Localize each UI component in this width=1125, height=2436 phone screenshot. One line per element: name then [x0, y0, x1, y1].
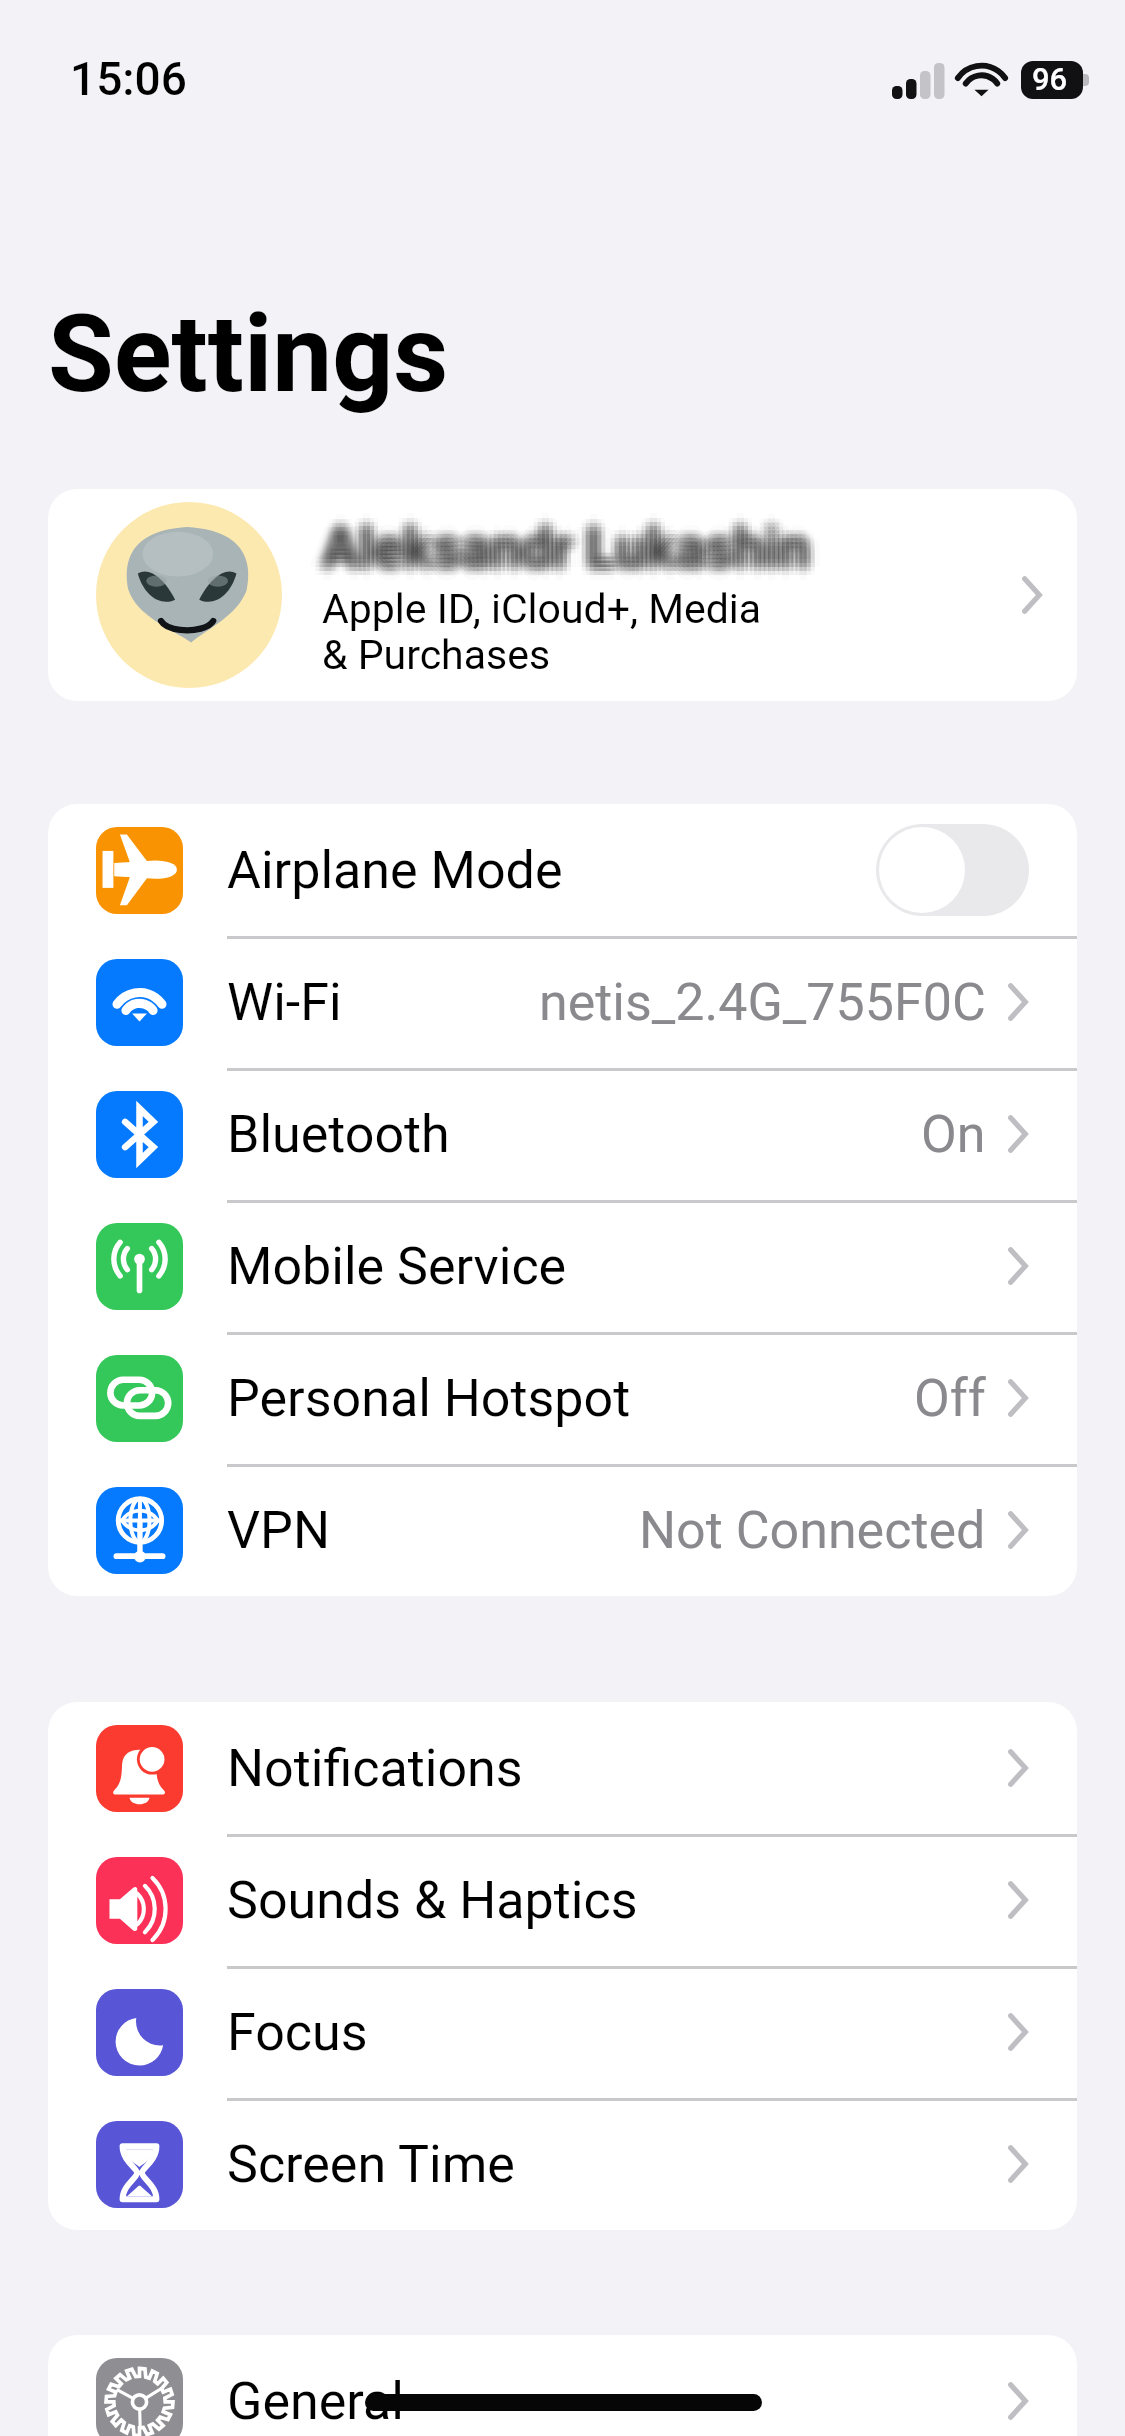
staticText: Aleksandr Lukashin: [314, 512, 802, 576]
button[interactable]: Focus: [48, 1966, 1077, 2098]
staticText: VPN: [227, 1500, 331, 1561]
button[interactable]: Bluetooth: [48, 1068, 1077, 1200]
staticText: Aleksandr Lukashin: [314, 508, 802, 572]
staticText: Aleksandr Lukashin: [318, 512, 806, 576]
staticText: Aleksandr Lukashin: [326, 508, 814, 572]
button[interactable]: Wi-Fi: [48, 936, 1077, 1068]
button[interactable]: Aleksandr Lukashin: [48, 489, 1077, 701]
staticText: Aleksandr Lukashin: [314, 516, 802, 580]
staticText: Aleksandr Lukashin: [318, 516, 806, 580]
button[interactable]: Mobile Service: [48, 1200, 1077, 1332]
button[interactable]: Screen Time: [48, 2098, 1077, 2230]
staticText: Aleksandr Lukashin: [322, 516, 810, 580]
staticText: Aleksandr Lukashin: [314, 520, 802, 584]
staticText: Aleksandr Lukashin: [318, 508, 806, 572]
staticText: Aleksandr Lukashin: [335, 516, 823, 580]
button[interactable]: General: [48, 2335, 1077, 2436]
staticText: 96: [1032, 61, 1068, 97]
staticText: Aleksandr Lukashin: [322, 524, 810, 588]
staticText: Off: [914, 1368, 986, 1429]
button[interactable]: Airplane Mode: [48, 804, 1077, 936]
staticText: Aleksandr Lukashin: [330, 512, 818, 576]
staticText: netis_2.4G_755F0C: [539, 972, 986, 1033]
staticText: Aleksandr Lukashin: [318, 520, 806, 584]
button[interactable]: Personal Hotspot: [48, 1332, 1077, 1464]
staticText: Aleksandr Lukashin: [326, 516, 814, 580]
staticText: Aleksandr Lukashin: [326, 524, 814, 588]
staticText: Notifications: [227, 1738, 523, 1799]
staticText: Personal Hotspot: [227, 1368, 631, 1429]
staticText: Aleksandr Lukashin: [314, 524, 802, 588]
staticText: Aleksandr Lukashin: [309, 516, 797, 580]
staticText: Aleksandr Lukashin: [322, 520, 810, 584]
staticText: Aleksandr Lukashin: [322, 508, 810, 572]
button[interactable]: Sounds & Haptics: [48, 1834, 1077, 1966]
staticText: Aleksandr Lukashin: [330, 524, 818, 588]
staticText: Airplane Mode: [227, 840, 563, 901]
staticText: On: [921, 1104, 986, 1165]
staticText: Aleksandr Lukashin: [322, 503, 810, 567]
staticText: General: [227, 2371, 404, 2432]
staticText: Aleksandr Lukashin: [326, 520, 814, 584]
staticText: Screen Time: [227, 2134, 515, 2195]
staticText: Focus: [227, 2002, 368, 2063]
staticText: 15:06: [70, 52, 187, 106]
staticText: Bluetooth: [227, 1104, 450, 1165]
staticText: Wi-Fi: [227, 972, 342, 1033]
button[interactable]: VPN: [48, 1464, 1077, 1596]
staticText: Settings: [48, 292, 449, 417]
staticText: Aleksandr Lukashin: [330, 508, 818, 572]
staticText: Not Connected: [639, 1500, 986, 1561]
staticText: Aleksandr Lukashin: [322, 512, 810, 576]
button[interactable]: Airplane Mode toggle: [876, 824, 1029, 916]
staticText: Aleksandr Lukashin: [330, 520, 818, 584]
staticText: Aleksandr Lukashin: [322, 529, 810, 593]
staticText: Mobile Service: [227, 1236, 567, 1297]
button[interactable]: Notifications: [48, 1702, 1077, 1834]
staticText: Aleksandr Lukashin: [326, 512, 814, 576]
staticText: Sounds & Haptics: [227, 1870, 638, 1931]
staticText: Apple ID, iCloud+, Media & Purchases: [322, 585, 762, 679]
staticText: Aleksandr Lukashin: [330, 516, 818, 580]
staticText: Aleksandr Lukashin: [318, 524, 806, 588]
